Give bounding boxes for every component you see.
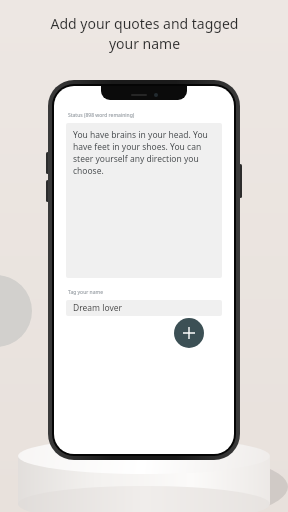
button[interactable]: Dream lover [66,300,222,316]
staticText: Status (898 word remaining) [68,112,135,119]
staticText: You have brains in your head. You have f… [73,129,215,177]
button[interactable]: Add quote [174,318,204,348]
button[interactable]: You have brains in your head. You have f… [66,123,222,278]
staticText: Dream lover [73,302,123,314]
staticText: Add your quotes and tagged your name [18,14,271,54]
staticText: Tag your name [68,289,103,296]
